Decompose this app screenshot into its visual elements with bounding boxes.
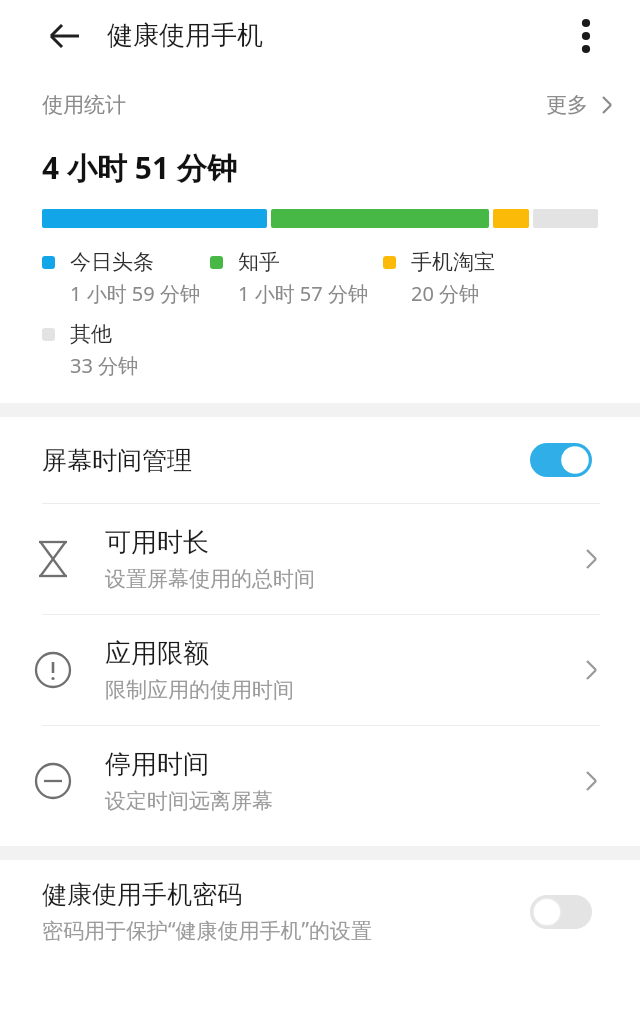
- staticText: 应用限额: [105, 637, 209, 670]
- staticText: 设置屏幕使用的总时间: [105, 566, 315, 592]
- button[interactable]: More options: [562, 12, 610, 60]
- staticText: 健康使用手机密码: [42, 879, 242, 910]
- staticText: 1 小时 59 分钟: [70, 280, 200, 307]
- staticText: 20 分钟: [411, 280, 480, 307]
- staticText: 屏幕时间管理: [42, 445, 192, 476]
- button[interactable]: 使用统计: [0, 72, 640, 138]
- staticText: 其他: [70, 321, 112, 347]
- staticText: 密码用于保护“健康使用手机”的设置: [42, 916, 373, 945]
- staticText: 今日头条: [70, 249, 154, 275]
- staticText: 1 小时 57 分钟: [238, 280, 368, 307]
- button[interactable]: 停用时间: [0, 726, 640, 836]
- staticText: 限制应用的使用时间: [105, 677, 294, 703]
- staticText: 33 分钟: [70, 352, 139, 379]
- button[interactable]: Toggle on: [530, 443, 592, 477]
- button[interactable]: 应用限额: [0, 615, 640, 725]
- staticText: 更多: [546, 92, 588, 118]
- staticText: 手机淘宝: [411, 249, 495, 275]
- staticText: 停用时间: [105, 748, 209, 781]
- button[interactable]: Back: [40, 12, 88, 60]
- button[interactable]: Toggle off: [530, 895, 592, 929]
- staticText: 可用时长: [105, 526, 209, 559]
- button[interactable]: 健康使用手机密码: [0, 860, 640, 964]
- button[interactable]: 屏幕时间管理: [0, 417, 640, 503]
- staticText: 知乎: [238, 249, 280, 275]
- staticText: 4 小时 51 分钟: [42, 147, 237, 188]
- staticText: 使用统计: [42, 92, 126, 118]
- staticText: 健康使用手机: [107, 19, 263, 52]
- staticText: 设定时间远离屏幕: [105, 788, 273, 814]
- button[interactable]: 可用时长: [0, 504, 640, 614]
